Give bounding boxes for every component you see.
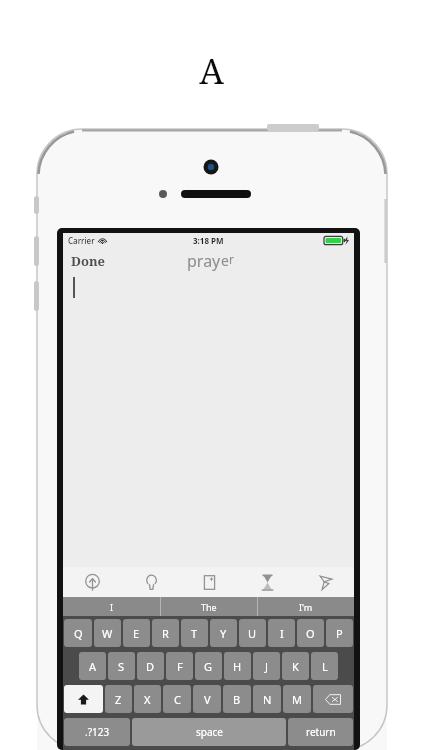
staticText: Carrier [68,235,95,246]
button[interactable]: D [137,652,164,680]
button[interactable]: History [238,567,296,597]
button[interactable]: O [297,619,324,647]
button[interactable]: T [181,619,208,647]
button[interactable]: Y [210,619,237,647]
staticText: r [229,251,234,267]
staticText: O [306,626,315,641]
staticText: M [292,692,302,707]
button[interactable]: I'm [258,597,354,616]
staticText: N [263,692,272,707]
staticText: W [102,626,113,641]
button[interactable]: return [288,718,353,746]
staticText: space [196,725,223,739]
button[interactable]: L [311,652,338,680]
button[interactable]: Send [296,567,354,597]
button[interactable]: space [132,718,286,746]
staticText: R [162,626,169,641]
staticText: C [174,692,181,707]
staticText: K [292,659,299,674]
staticText: D [146,659,155,674]
staticText: G [204,659,213,674]
staticText: Q [74,626,83,641]
button[interactable]: N [253,685,281,713]
staticText: B [233,692,241,707]
staticText: Z [115,692,122,707]
button[interactable]: .?123 [64,718,130,746]
button[interactable]: G [195,652,222,680]
button[interactable]: C [163,685,191,713]
button[interactable]: Done [71,252,106,270]
button[interactable]: P [326,619,353,647]
staticText: L [322,659,328,674]
button[interactable]: Note [180,567,238,597]
staticText: 3:18 PM [193,235,224,246]
button[interactable]: I [268,619,295,647]
button[interactable]: Share [63,567,122,597]
button[interactable]: A [79,652,106,680]
staticText: I [110,601,114,613]
button[interactable]: W [94,619,121,647]
staticText: U [248,626,257,641]
staticText: The [201,601,217,613]
button[interactable]: I [63,597,160,616]
staticText: T [191,626,198,641]
staticText: A [199,47,224,95]
staticText: I'm [299,601,313,613]
button[interactable]: E [123,619,150,647]
staticText: S [118,659,125,674]
button[interactable]: R [152,619,179,647]
staticText: X [144,692,151,707]
staticText: F [177,659,183,674]
button[interactable]: M [283,685,311,713]
button[interactable]: H [224,652,251,680]
button[interactable]: K [282,652,309,680]
button[interactable]: X [134,685,161,713]
staticText: return [306,725,336,739]
staticText: V [204,692,211,707]
staticText: H [233,659,242,674]
staticText: Y [220,626,227,641]
button[interactable]: The [161,597,257,616]
button[interactable]: Backspace [313,685,353,713]
button[interactable]: U [239,619,266,647]
button[interactable]: F [166,652,193,680]
staticText: e [221,251,229,270]
staticText: I [280,626,284,641]
staticText: E [133,626,140,641]
button[interactable]: V [193,685,221,713]
staticText: A [89,659,97,674]
button[interactable]: J [253,652,280,680]
button[interactable]: B [223,685,251,713]
button[interactable]: Shift [64,685,103,713]
button[interactable]: S [108,652,135,680]
staticText: pray [187,250,221,272]
staticText: J [265,659,269,674]
staticText: P [336,626,343,641]
button[interactable]: Q [64,619,92,647]
button[interactable]: Z [105,685,132,713]
button[interactable]: Idea [122,567,180,597]
staticText: .?123 [85,725,110,739]
